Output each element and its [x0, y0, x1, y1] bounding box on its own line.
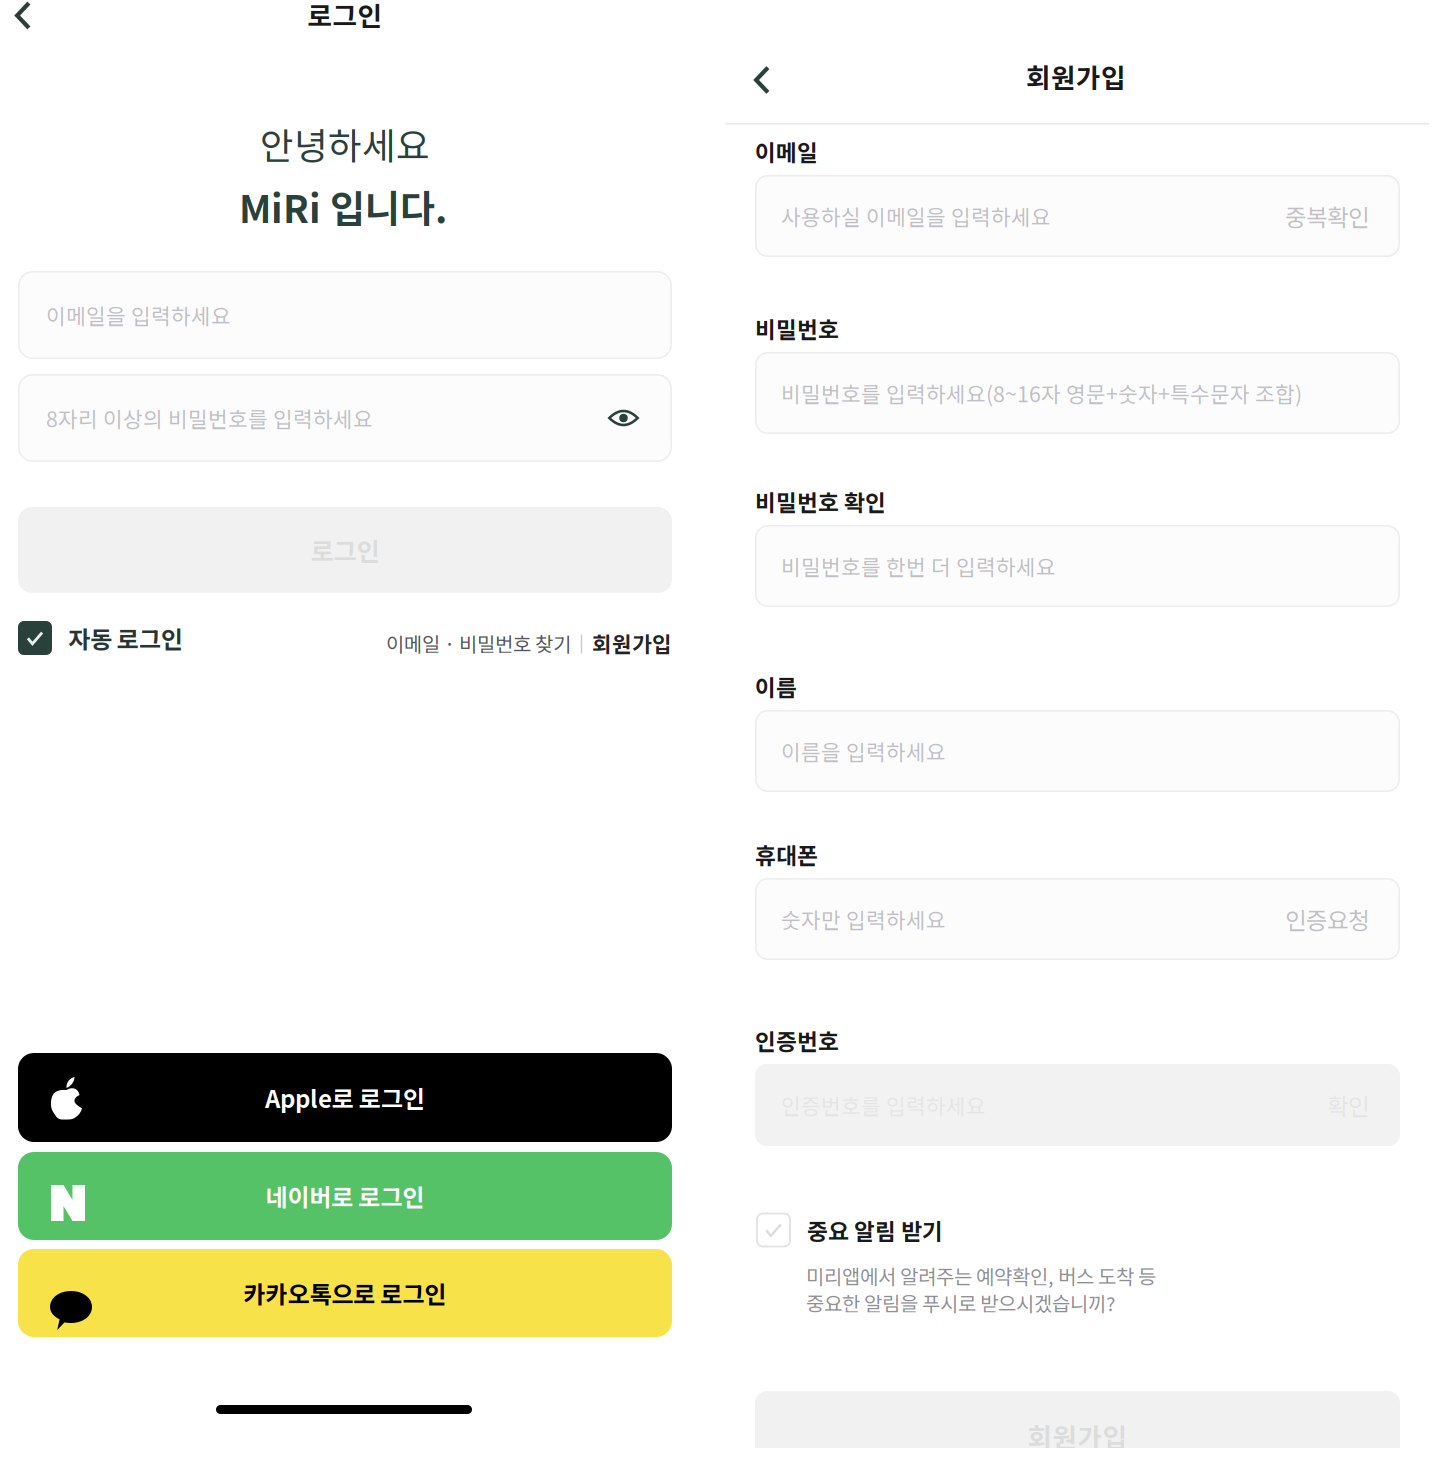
- staticText: 이메일: [755, 135, 818, 168]
- staticText: Apple로 로그인: [265, 1080, 425, 1115]
- button[interactable]: Apple로 로그인: [18, 1053, 672, 1142]
- button[interactable]: 중요 알림 받기: [756, 1212, 1086, 1248]
- staticText: 비밀번호를 한번 더 입력하세요: [781, 551, 1056, 581]
- button[interactable]: 이메일 · 비밀번호 찾기: [386, 628, 571, 657]
- staticText: 회원가입: [592, 628, 672, 658]
- button[interactable]: 네이버로 로그인: [18, 1152, 672, 1240]
- staticText: 중복확인: [1285, 199, 1369, 233]
- button[interactable]: 비밀번호를 입력하세요(8~16자 영문+숫자+특수문자 조합): [755, 352, 1400, 434]
- staticText: 이름: [755, 670, 797, 703]
- button[interactable]: 비밀번호를 한번 더 입력하세요: [755, 525, 1400, 607]
- staticText: 확인: [1327, 1088, 1369, 1122]
- staticText: 안녕하세요: [260, 117, 430, 170]
- staticText: 휴대폰: [755, 838, 818, 871]
- staticText: 네이버로 로그인: [265, 1179, 424, 1213]
- staticText: 비밀번호 확인: [755, 485, 886, 518]
- staticText: 인증번호를 입력하세요: [781, 1090, 986, 1120]
- staticText: 이메일 · 비밀번호 찾기: [386, 628, 571, 657]
- button[interactable]: 회원가입: [592, 628, 672, 658]
- staticText: 로그인: [307, 0, 382, 34]
- button[interactable]: 카카오톡으로 로그인: [18, 1249, 672, 1337]
- button[interactable]: Back: [0, 0, 52, 43]
- button[interactable]: 회원가입: [755, 1391, 1400, 1448]
- staticText: 자동 로그인: [68, 621, 183, 655]
- staticText: 로그인: [310, 532, 379, 568]
- staticText: 회원가입: [1027, 1417, 1127, 1455]
- staticText: 이메일을 입력하세요: [46, 300, 231, 330]
- staticText: 인증요청: [1285, 902, 1369, 936]
- staticText: 비밀번호를 입력하세요(8~16자 영문+숫자+특수문자 조합): [781, 378, 1302, 408]
- button[interactable]: 사용하실 이메일을 입력하세요: [755, 175, 1400, 257]
- staticText: 숫자만 입력하세요: [781, 904, 946, 934]
- staticText: 사용하실 이메일을 입력하세요: [781, 201, 1051, 231]
- button[interactable]: 8자리 이상의 비밀번호를 입력하세요: [18, 374, 672, 462]
- staticText: MiRi 입니다.: [239, 179, 447, 234]
- staticText: 8자리 이상의 비밀번호를 입력하세요: [46, 403, 373, 433]
- staticText: 이름을 입력하세요: [781, 736, 946, 766]
- staticText: 미리앱에서 알려주는 예약확인, 버스 도착 등: [806, 1261, 1156, 1290]
- staticText: 회원가입: [1026, 57, 1126, 96]
- staticText: 비밀번호: [755, 312, 839, 345]
- button[interactable]: Back: [733, 52, 791, 108]
- staticText: 인증번호: [755, 1024, 839, 1057]
- staticText: 중요 알림 받기: [807, 1214, 943, 1246]
- staticText: 카카오톡으로 로그인: [243, 1276, 446, 1310]
- button[interactable]: 이메일을 입력하세요: [18, 271, 672, 359]
- staticText: 중요한 알림을 푸시로 받으시겠습니끼?: [806, 1288, 1115, 1317]
- button[interactable]: 이름을 입력하세요: [755, 710, 1400, 792]
- button[interactable]: 자동 로그인: [18, 621, 218, 655]
- button[interactable]: 숫자만 입력하세요: [755, 878, 1400, 960]
